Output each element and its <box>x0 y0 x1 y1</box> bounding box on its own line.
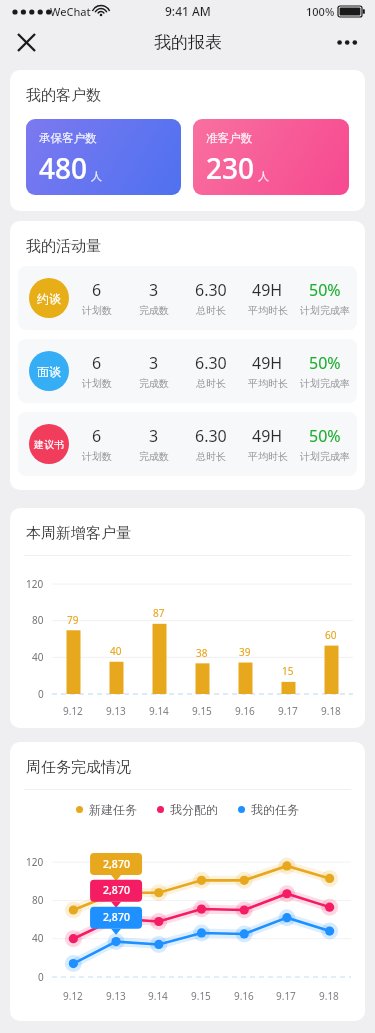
staticText: 9:41 AM <box>165 3 211 19</box>
staticText: 3 <box>149 425 159 447</box>
staticText: 50% <box>309 279 341 301</box>
staticText: 9.17 <box>278 704 298 718</box>
staticText: 6 <box>92 352 102 374</box>
staticText: 79 <box>67 613 79 627</box>
staticText: 6.30 <box>195 279 227 301</box>
staticText: 9.14 <box>148 989 168 1003</box>
staticText: 100% <box>306 4 335 19</box>
staticText: 完成数 <box>139 450 169 463</box>
staticText: 0 <box>38 687 44 701</box>
staticText: WeChat <box>50 4 91 19</box>
staticText: 230 <box>206 149 255 187</box>
staticText: 本周新增客户量 <box>26 524 131 543</box>
staticText: 40 <box>32 650 44 664</box>
button[interactable]: 建议书 <box>18 412 357 476</box>
staticText: 约谈 <box>37 291 61 306</box>
staticText: 9.18 <box>319 989 339 1003</box>
staticText: 平均时长 <box>248 377 288 390</box>
staticText: 9.16 <box>234 989 254 1003</box>
staticText: 我的活动量 <box>26 237 101 256</box>
button[interactable]: Close <box>6 22 46 62</box>
staticText: 15 <box>282 664 294 678</box>
staticText: 3 <box>149 352 159 374</box>
staticText: 9.18 <box>321 704 341 718</box>
staticText: 3 <box>149 279 159 301</box>
staticText: 9.12 <box>63 704 83 718</box>
staticText: 40 <box>32 931 44 945</box>
staticText: 40 <box>110 644 122 658</box>
staticText: 49H <box>252 352 283 374</box>
button[interactable]: More options <box>327 22 367 62</box>
staticText: 120 <box>26 577 44 591</box>
staticText: 9.15 <box>192 704 212 718</box>
staticText: 6.30 <box>195 352 227 374</box>
staticText: 总时长 <box>196 304 226 317</box>
staticText: 计划完成率 <box>300 377 350 390</box>
staticText: 我的任务 <box>251 802 299 817</box>
staticText: 总时长 <box>196 450 226 463</box>
staticText: 2,870 <box>103 910 130 924</box>
staticText: 6 <box>92 279 102 301</box>
staticText: 49H <box>252 425 283 447</box>
button[interactable]: 承保客户数 <box>26 119 181 195</box>
staticText: 人 <box>91 169 102 183</box>
staticText: 9.13 <box>106 989 126 1003</box>
staticText: 9.15 <box>191 989 211 1003</box>
staticText: 2,870 <box>103 857 130 871</box>
staticText: 9.12 <box>63 989 83 1003</box>
staticText: 80 <box>32 893 44 907</box>
staticText: 6.30 <box>195 425 227 447</box>
staticText: 39 <box>239 645 251 659</box>
staticText: 我分配的 <box>170 802 218 817</box>
staticText: 建议书 <box>34 438 64 451</box>
staticText: 平均时长 <box>248 450 288 463</box>
staticText: 480 <box>39 149 88 187</box>
staticText: 完成数 <box>139 304 169 317</box>
staticText: 平均时长 <box>248 304 288 317</box>
staticText: 9.16 <box>235 704 255 718</box>
staticText: 60 <box>325 628 337 642</box>
staticText: 2,870 <box>103 883 130 897</box>
staticText: 6 <box>92 425 102 447</box>
staticText: 87 <box>153 606 165 620</box>
staticText: 总时长 <box>196 377 226 390</box>
staticText: 50% <box>309 425 341 447</box>
staticText: 我的客户数 <box>26 86 101 105</box>
staticText: 完成数 <box>139 377 169 390</box>
staticText: 50% <box>309 352 341 374</box>
button[interactable]: 准客户数 <box>193 119 349 195</box>
staticText: 120 <box>26 855 44 869</box>
staticText: 计划数 <box>82 377 112 390</box>
staticText: 计划完成率 <box>300 304 350 317</box>
staticText: 我的报表 <box>154 32 222 53</box>
staticText: 计划数 <box>82 450 112 463</box>
staticText: 承保客户数 <box>39 131 97 145</box>
staticText: 9.13 <box>106 704 126 718</box>
staticText: 周任务完成情况 <box>26 758 131 777</box>
staticText: 9.17 <box>276 989 296 1003</box>
staticText: 准客户数 <box>206 131 252 145</box>
staticText: 计划完成率 <box>300 450 350 463</box>
staticText: 49H <box>252 279 283 301</box>
staticText: 新建任务 <box>89 802 137 817</box>
staticText: 人 <box>258 169 269 183</box>
staticText: 面谈 <box>37 364 61 379</box>
button[interactable]: 面谈 <box>18 339 357 403</box>
staticText: 38 <box>196 646 208 660</box>
staticText: 9.14 <box>149 704 169 718</box>
staticText: 计划数 <box>82 304 112 317</box>
staticText: 0 <box>38 970 44 984</box>
staticText: 80 <box>32 613 44 627</box>
button[interactable]: 约谈 <box>18 266 357 330</box>
